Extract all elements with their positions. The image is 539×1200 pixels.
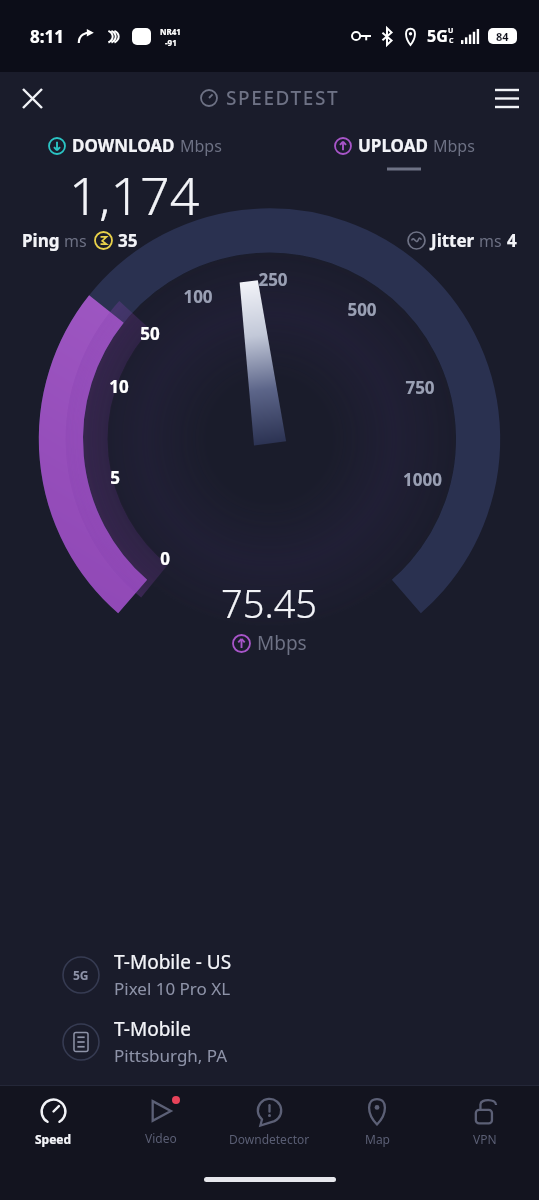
staticText: Speed xyxy=(35,1131,72,1147)
staticText: 50 xyxy=(140,322,160,345)
staticText: U xyxy=(448,26,454,36)
button[interactable]: Speed xyxy=(0,1086,107,1158)
staticText: T-Mobile - US xyxy=(114,949,232,975)
staticText: 500 xyxy=(347,298,377,321)
button[interactable]: Video xyxy=(107,1086,215,1158)
staticText: C xyxy=(449,36,454,46)
button[interactable]: Close xyxy=(10,76,54,120)
staticText: 750 xyxy=(405,376,435,399)
button[interactable]: T-Mobile xyxy=(62,1016,519,1067)
staticText: Mbps xyxy=(433,135,475,157)
staticText: 100 xyxy=(183,285,213,308)
button[interactable]: Map xyxy=(323,1086,431,1158)
staticText: Mbps xyxy=(180,135,222,157)
staticText: UPLOAD xyxy=(358,134,428,157)
staticText: DOWNLOAD xyxy=(72,134,175,157)
button[interactable]: Menu xyxy=(485,76,529,120)
staticText: Pittsburgh, PA xyxy=(114,1044,228,1067)
staticText: 4 xyxy=(507,229,517,252)
button[interactable]: Downdetector xyxy=(215,1086,323,1158)
staticText: VPN xyxy=(473,1131,497,1147)
staticText: 1000 xyxy=(403,468,442,491)
staticText: T-Mobile xyxy=(114,1016,191,1042)
staticText: 8:11 xyxy=(30,25,64,48)
staticText: 5 xyxy=(110,466,120,489)
staticText: Pixel 10 Pro XL xyxy=(114,977,231,1000)
staticText: Map xyxy=(365,1131,390,1147)
staticText: ms xyxy=(479,230,502,252)
staticText: 10 xyxy=(109,375,129,398)
staticText: Video xyxy=(145,1130,177,1146)
staticText: NR41 xyxy=(160,26,181,37)
staticText: 35 xyxy=(118,229,138,252)
staticText: 0 xyxy=(160,547,170,570)
staticText: 84 xyxy=(496,29,509,44)
staticText: 75.45 xyxy=(221,577,318,629)
staticText: Mbps xyxy=(257,630,307,656)
staticText: 5G xyxy=(427,25,448,47)
staticText: 250 xyxy=(258,268,288,291)
button[interactable]: VPN xyxy=(431,1086,539,1158)
staticText: 1,174 xyxy=(69,159,200,221)
staticText: Ping xyxy=(22,229,60,252)
staticText: -91 xyxy=(165,37,177,48)
staticText: 5G xyxy=(73,967,89,983)
staticText: Downdetector xyxy=(229,1131,310,1147)
staticText: SPEEDTEST xyxy=(226,85,340,111)
button[interactable]: 5G xyxy=(62,949,519,1000)
staticText: ms xyxy=(64,230,87,252)
staticText: Jitter xyxy=(431,229,475,252)
